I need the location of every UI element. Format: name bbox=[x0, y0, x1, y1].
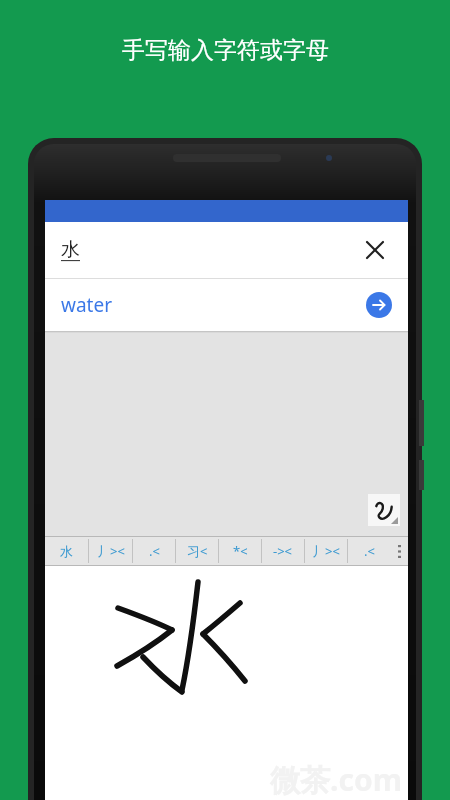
staticText: 微茶.com bbox=[270, 759, 402, 800]
button[interactable]: .< bbox=[348, 536, 390, 566]
button[interactable]: ->< bbox=[262, 536, 304, 566]
button[interactable]: 丿>< bbox=[305, 536, 347, 566]
button[interactable]: 习< bbox=[176, 536, 218, 566]
staticText: ->< bbox=[273, 542, 293, 560]
staticText: water bbox=[61, 292, 113, 318]
staticText: 水 bbox=[61, 238, 80, 262]
button[interactable]: *< bbox=[219, 536, 261, 566]
staticText: 丿>< bbox=[312, 542, 340, 560]
staticText: 丿>< bbox=[97, 542, 125, 560]
staticText: *< bbox=[233, 542, 248, 560]
staticText: 手写输入字符或字母 bbox=[122, 36, 329, 65]
staticText: 习< bbox=[187, 542, 208, 560]
button[interactable]: 水 bbox=[45, 222, 408, 278]
button[interactable]: Clear bbox=[358, 233, 392, 267]
button[interactable]: More options bbox=[390, 536, 408, 566]
staticText: .< bbox=[364, 542, 375, 560]
button[interactable]: .< bbox=[133, 536, 175, 566]
staticText: .< bbox=[149, 542, 160, 560]
button[interactable]: Search bbox=[366, 292, 392, 318]
button[interactable]: 丿>< bbox=[89, 536, 132, 566]
button[interactable]: water bbox=[45, 279, 408, 331]
button[interactable]: 水 bbox=[45, 536, 88, 566]
staticText: 水 bbox=[60, 543, 73, 559]
button[interactable]: Handwriting input bbox=[368, 494, 400, 526]
button[interactable]: Handwriting canvas bbox=[45, 566, 408, 800]
